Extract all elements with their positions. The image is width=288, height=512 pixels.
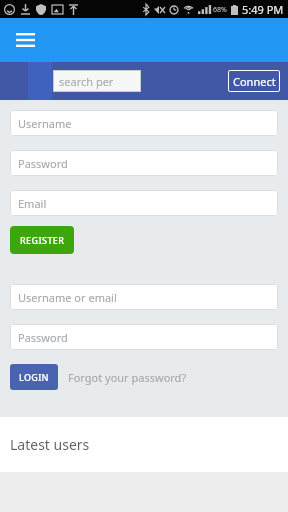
staticText: Password <box>18 156 68 171</box>
staticText: 68% <box>213 5 227 15</box>
button[interactable]: Forgot your password? <box>68 370 187 385</box>
button[interactable]: Password <box>10 324 278 350</box>
button[interactable]: Username or email <box>10 284 278 310</box>
button[interactable]: Username <box>10 110 278 136</box>
staticText: Email <box>18 196 47 211</box>
button[interactable]: Open navigation menu <box>10 28 40 52</box>
staticText: LOGIN <box>19 371 49 383</box>
button[interactable]: Connect <box>228 70 280 92</box>
button[interactable]: Password <box>10 150 278 176</box>
button[interactable]: Email <box>10 190 278 216</box>
button[interactable]: LOGIN <box>10 364 58 390</box>
staticText: Latest users <box>10 435 90 454</box>
staticText: Username <box>18 116 72 131</box>
staticText: Password <box>18 330 68 345</box>
staticText: REGISTER <box>20 234 65 246</box>
button[interactable]: REGISTER <box>10 226 74 254</box>
staticText: 5:49 PM <box>242 2 284 17</box>
staticText: Forgot your password? <box>68 370 187 385</box>
button[interactable]: search per <box>53 70 141 92</box>
staticText: search per <box>59 74 114 89</box>
staticText: Username or email <box>18 290 117 305</box>
staticText: Connect <box>233 74 276 89</box>
